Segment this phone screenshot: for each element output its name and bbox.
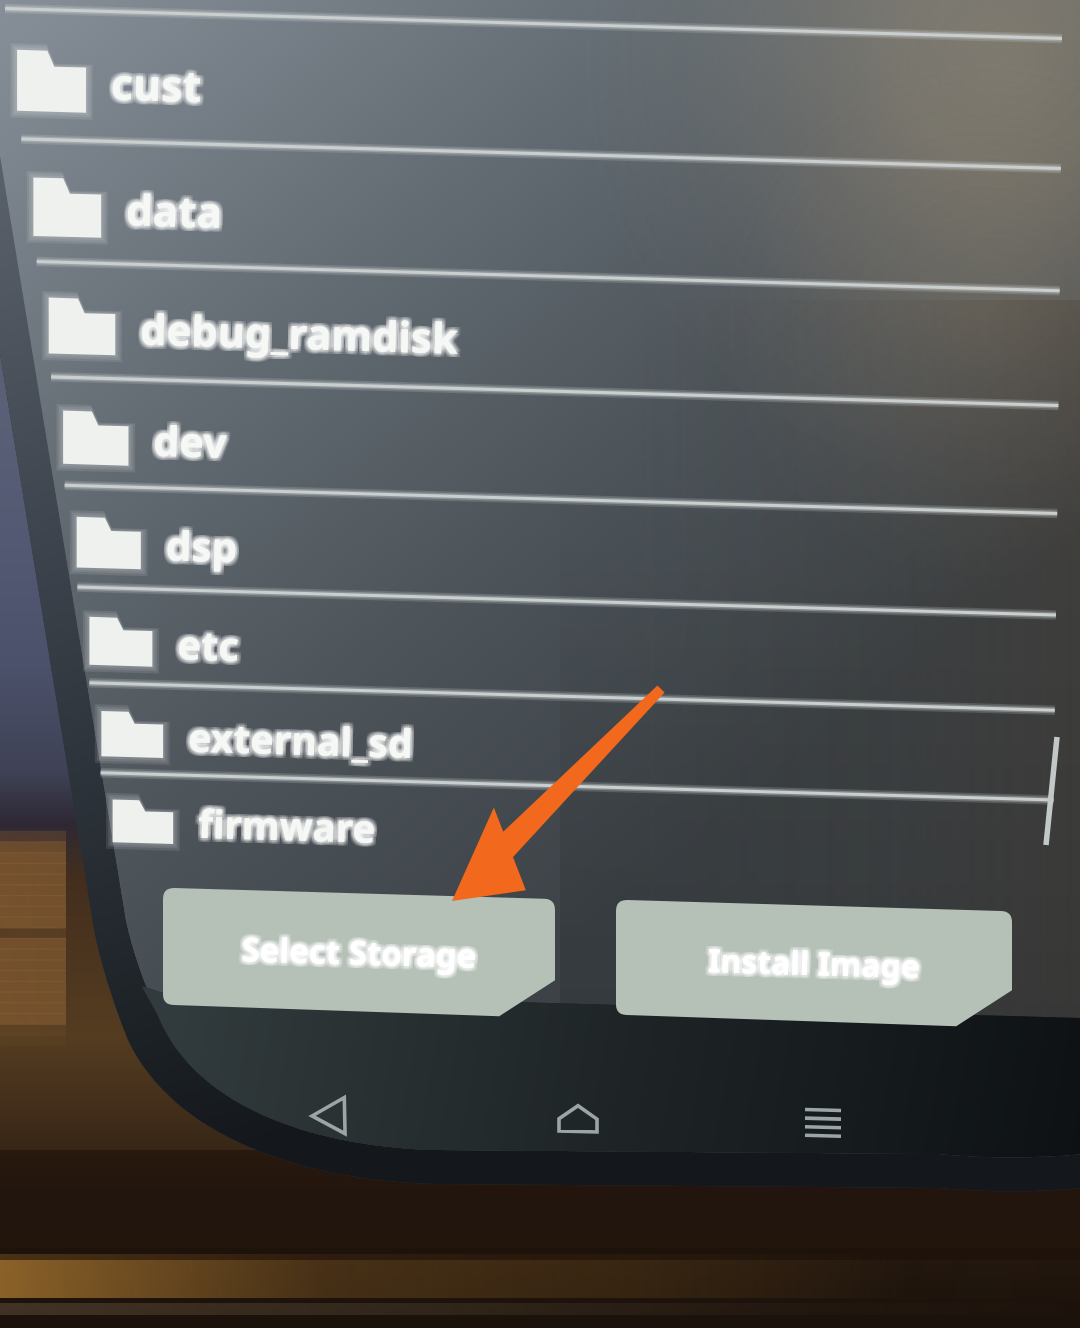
button[interactable]: Recent apps: [778, 1078, 870, 1170]
button[interactable]: Home: [532, 1076, 624, 1168]
button[interactable]: etc: [75, 592, 1080, 688]
button[interactable]: debug_ramdisk: [36, 268, 1080, 383]
button[interactable]: Back: [286, 1070, 378, 1162]
other: File browser list: [0, 0, 1080, 1328]
button[interactable]: Install Image: [616, 900, 1012, 1015]
button[interactable]: dev: [49, 383, 1080, 491]
button[interactable]: firmware: [101, 777, 1080, 860]
button[interactable]: cust: [10, 16, 1060, 146]
button[interactable]: data: [23, 146, 1073, 268]
button[interactable]: dsp: [62, 491, 1080, 592]
button[interactable]: Select Storage: [163, 888, 555, 1005]
button[interactable]: external_sd: [88, 688, 1080, 777]
